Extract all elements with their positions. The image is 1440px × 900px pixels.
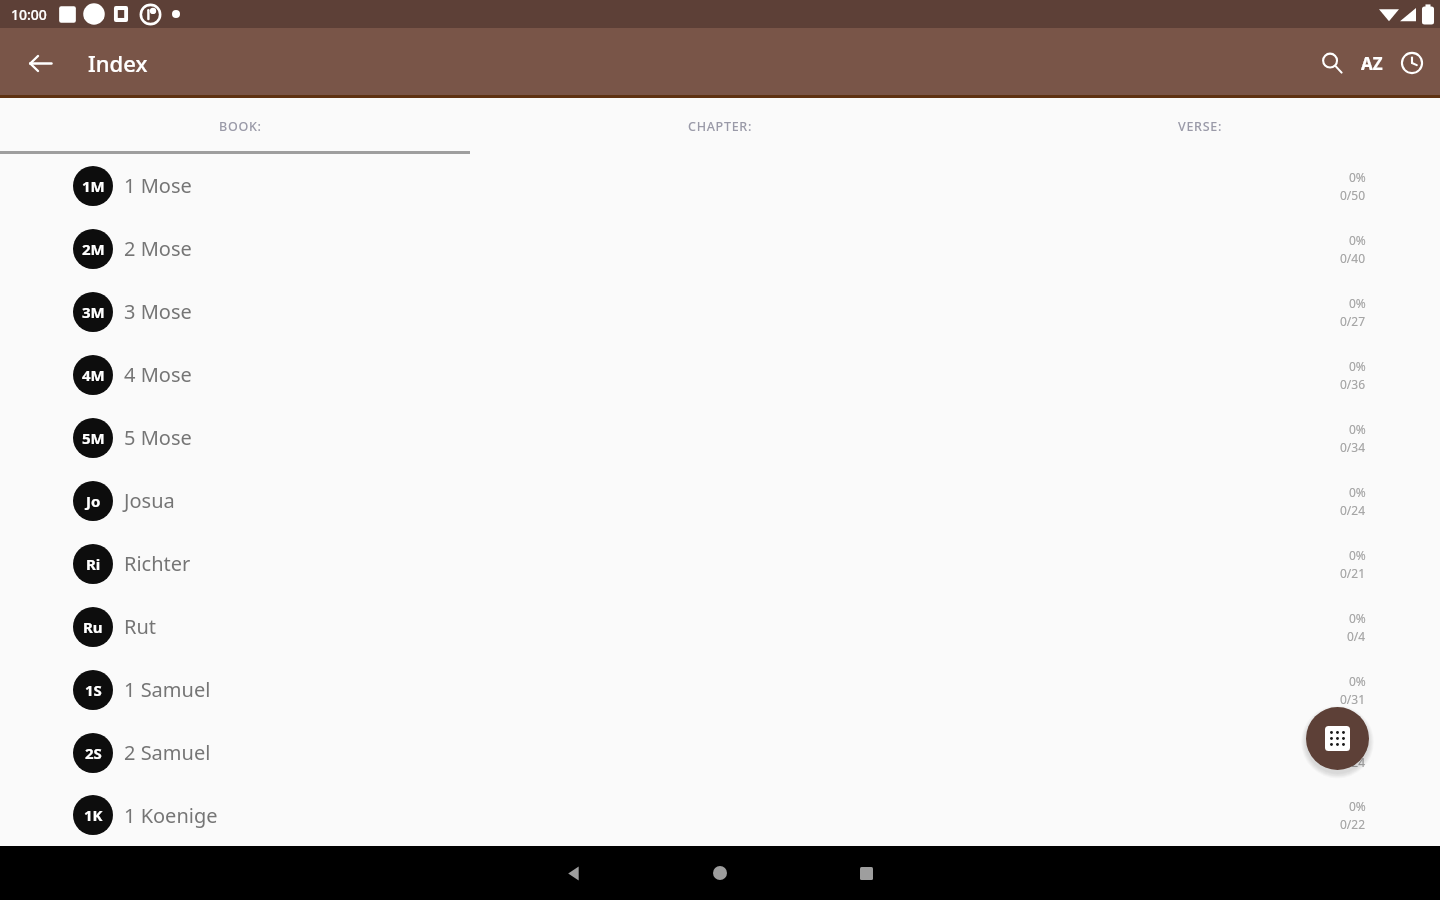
staticText: Josua xyxy=(124,487,175,514)
staticText: 2S xyxy=(85,743,102,763)
button[interactable]: Ru xyxy=(0,595,1440,658)
staticText: 0% xyxy=(1349,421,1366,437)
staticText: Jo xyxy=(86,491,101,511)
button[interactable]: Back xyxy=(539,846,609,900)
button[interactable]: BOOK: xyxy=(0,98,480,154)
staticText: 0% xyxy=(1349,232,1366,248)
staticText: 0% xyxy=(1349,547,1366,563)
button[interactable]: 3M xyxy=(0,280,1440,343)
staticText: 1 Mose xyxy=(124,172,192,199)
staticText: 5M xyxy=(82,428,105,448)
staticText: 0% xyxy=(1349,736,1366,752)
staticText: 0/34 xyxy=(1340,439,1366,455)
staticText: VERSE: xyxy=(1178,118,1222,135)
button[interactable]: VERSE: xyxy=(960,98,1440,154)
staticText: 2 Samuel xyxy=(124,739,211,766)
staticText: 0% xyxy=(1349,169,1366,185)
staticText: 0% xyxy=(1349,295,1366,311)
staticText: 0% xyxy=(1349,610,1366,626)
staticText: 0/40 xyxy=(1340,250,1366,266)
button[interactable]: 1K xyxy=(0,784,1440,846)
staticText: 0/50 xyxy=(1340,187,1366,203)
staticText: 0% xyxy=(1349,358,1366,374)
button[interactable]: Search xyxy=(1312,43,1352,83)
staticText: 0/36 xyxy=(1340,376,1366,392)
button[interactable]: History xyxy=(1392,43,1432,83)
staticText: Ru xyxy=(83,617,103,637)
staticText: 4 Mose xyxy=(124,361,192,388)
staticText: 0/24 xyxy=(1340,754,1366,770)
button[interactable]: Home xyxy=(685,846,755,900)
staticText: 4M xyxy=(82,365,105,385)
staticText: 0% xyxy=(1349,798,1366,814)
staticText: Ri xyxy=(86,554,101,574)
staticText: 2 Mose xyxy=(124,235,192,262)
button[interactable]: Jo xyxy=(0,469,1440,532)
button[interactable]: 2M xyxy=(0,217,1440,280)
button[interactable]: 4M xyxy=(0,343,1440,406)
staticText: Index xyxy=(88,48,148,78)
button[interactable]: 5M xyxy=(0,406,1440,469)
staticText: 0/22 xyxy=(1340,816,1366,832)
staticText: 10:00 xyxy=(11,5,47,24)
button[interactable]: CHAPTER: xyxy=(480,98,960,154)
staticText: AZ xyxy=(1361,52,1383,75)
button[interactable]: Recents xyxy=(831,846,901,900)
staticText: 0/31 xyxy=(1340,691,1366,707)
staticText: 0/24 xyxy=(1340,502,1366,518)
staticText: 1 Koenige xyxy=(124,802,218,829)
staticText: 0/4 xyxy=(1347,628,1366,644)
staticText: 0% xyxy=(1349,673,1366,689)
button[interactable]: 2S xyxy=(0,721,1440,784)
staticText: 2M xyxy=(82,239,105,259)
staticText: 3M xyxy=(82,302,105,322)
button[interactable]: 1S xyxy=(0,658,1440,721)
staticText: 1S xyxy=(85,680,102,700)
staticText: 0% xyxy=(1349,484,1366,500)
staticText: 1K xyxy=(84,805,103,825)
staticText: BOOK: xyxy=(219,118,262,135)
button[interactable]: Back xyxy=(14,37,66,89)
staticText: 0/21 xyxy=(1340,565,1366,581)
button[interactable]: Ri xyxy=(0,532,1440,595)
staticText: 1 Samuel xyxy=(124,676,211,703)
staticText: 0/27 xyxy=(1340,313,1366,329)
staticText: Rut xyxy=(124,613,157,640)
button[interactable]: Open grid xyxy=(1306,707,1369,770)
staticText: CHAPTER: xyxy=(688,118,752,135)
staticText: 1M xyxy=(82,176,105,196)
button[interactable]: 1M xyxy=(0,154,1440,217)
staticText: Richter xyxy=(124,550,191,577)
staticText: 3 Mose xyxy=(124,298,192,325)
staticText: 5 Mose xyxy=(124,424,192,451)
button[interactable]: Sort alphabetically xyxy=(1352,43,1392,83)
